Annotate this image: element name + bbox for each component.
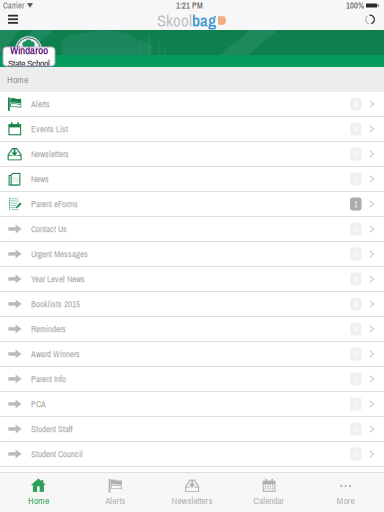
staticText: Contact Us [31, 223, 67, 235]
staticText: Award Winners [31, 348, 80, 360]
staticText: Newsletters [31, 148, 69, 160]
staticText: Booklists 2015 [31, 298, 80, 310]
staticText: Calendar [253, 494, 284, 507]
staticText: Reminders [31, 323, 66, 335]
staticText: Urgent Messages [31, 248, 88, 260]
staticText: bag [192, 9, 216, 32]
button[interactable]: Parent Info [0, 367, 384, 392]
staticText: Events List [31, 123, 68, 135]
button[interactable]: Contact Us [0, 217, 384, 242]
staticText: 1:21 PM [176, 0, 203, 11]
button[interactable]: PCA [0, 392, 384, 417]
button[interactable]: Reminders [0, 317, 384, 342]
button[interactable]: News [0, 167, 384, 192]
staticText: Carrier [3, 0, 24, 11]
button[interactable]: Year Level News [0, 267, 384, 292]
button[interactable]: More [307, 473, 384, 512]
staticText: 0 [354, 173, 358, 185]
button[interactable]: Parent eForms [0, 192, 384, 217]
staticText: 0 [354, 223, 358, 235]
staticText: 0 [354, 98, 358, 110]
button[interactable]: Student Staff [0, 417, 384, 442]
button[interactable]: Menu [0, 11, 30, 30]
button[interactable]: Alerts [0, 92, 384, 117]
staticText: Alerts [31, 98, 50, 110]
staticText: News [31, 173, 49, 185]
staticText: Newsletters [171, 494, 212, 507]
staticText: 0 [354, 298, 358, 310]
staticText: 1 [354, 198, 358, 210]
staticText: 0 [354, 123, 358, 135]
button[interactable]: Award Winners [0, 342, 384, 367]
staticText: 0 [354, 248, 358, 260]
staticText: Parent Info [31, 373, 66, 385]
staticText: 0 [354, 373, 358, 385]
button[interactable]: Newsletters [154, 473, 230, 512]
staticText: State School [8, 56, 50, 70]
staticText: Student Council [31, 448, 83, 460]
staticText: 100% [346, 0, 364, 11]
staticText: Home [7, 73, 28, 86]
staticText: 0 [354, 398, 358, 410]
staticText: 0 [354, 148, 358, 160]
staticText: 0 [354, 323, 358, 335]
staticText: 0 [354, 423, 358, 435]
button[interactable]: Refresh [353, 11, 384, 30]
staticText: Parent eForms [31, 198, 78, 210]
button[interactable]: Booklists 2015 [0, 292, 384, 317]
staticText: 0 [354, 448, 358, 460]
staticText: 0 [354, 348, 358, 360]
staticText: Student Staff [31, 423, 73, 435]
button[interactable]: Newsletters [0, 142, 384, 167]
button[interactable]: Student Council [0, 442, 384, 467]
button[interactable]: Calendar [230, 473, 307, 512]
button[interactable]: Alerts [77, 473, 154, 512]
staticText: Skool [157, 9, 192, 32]
staticText: Alerts [105, 494, 125, 507]
staticText: Home [28, 494, 49, 507]
staticText: Year Level News [31, 273, 85, 285]
button[interactable]: Urgent Messages [0, 242, 384, 267]
staticText: PCA [31, 398, 46, 410]
button[interactable]: Home [0, 473, 77, 512]
staticText: More [337, 494, 355, 507]
button[interactable]: Events List [0, 117, 384, 142]
staticText: 0 [354, 273, 358, 285]
staticText: Windaroo [10, 43, 48, 58]
